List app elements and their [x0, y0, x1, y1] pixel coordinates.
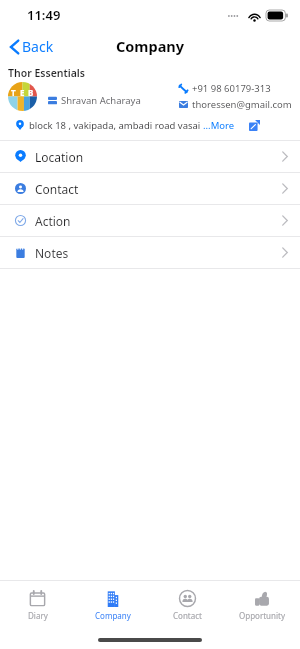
button[interactable]: Expand address — [245, 116, 263, 134]
button[interactable]: Contact — [150, 581, 225, 629]
staticText: T — [11, 87, 16, 98]
button[interactable]: Action — [0, 205, 300, 236]
button[interactable]: Notes — [0, 237, 300, 268]
staticText: Opportunity — [239, 610, 286, 621]
staticText: Diary — [28, 610, 48, 621]
staticText: Shravan Acharaya — [61, 94, 141, 107]
staticText: thoressen@gmail.com — [192, 98, 292, 111]
staticText: Company — [95, 610, 131, 621]
button[interactable]: Location — [0, 141, 300, 172]
button[interactable]: Company — [75, 581, 150, 629]
staticText: Company — [116, 36, 185, 56]
button[interactable]: Back — [6, 34, 58, 59]
button[interactable]: ...More — [203, 119, 235, 132]
staticText: B — [28, 87, 34, 98]
button[interactable]: Diary — [0, 581, 75, 629]
staticText: +91 98 60179-313 — [192, 82, 271, 95]
staticText: 11:49 — [27, 6, 61, 24]
button[interactable]: Thor Essentials — [0, 62, 300, 140]
staticText: Back — [22, 37, 54, 56]
staticText: block 18 , vakipada, ambadi road vasai — [29, 119, 203, 132]
staticText: Notes — [35, 245, 69, 261]
staticText: Thor Essentials — [8, 66, 86, 80]
staticText: E — [20, 87, 25, 98]
button[interactable]: Opportunity — [225, 581, 300, 629]
staticText: Action — [35, 213, 71, 229]
staticText: Contact — [35, 181, 79, 197]
button[interactable]: Contact — [0, 173, 300, 204]
staticText: Location — [35, 149, 84, 165]
staticText: Contact — [173, 610, 202, 621]
